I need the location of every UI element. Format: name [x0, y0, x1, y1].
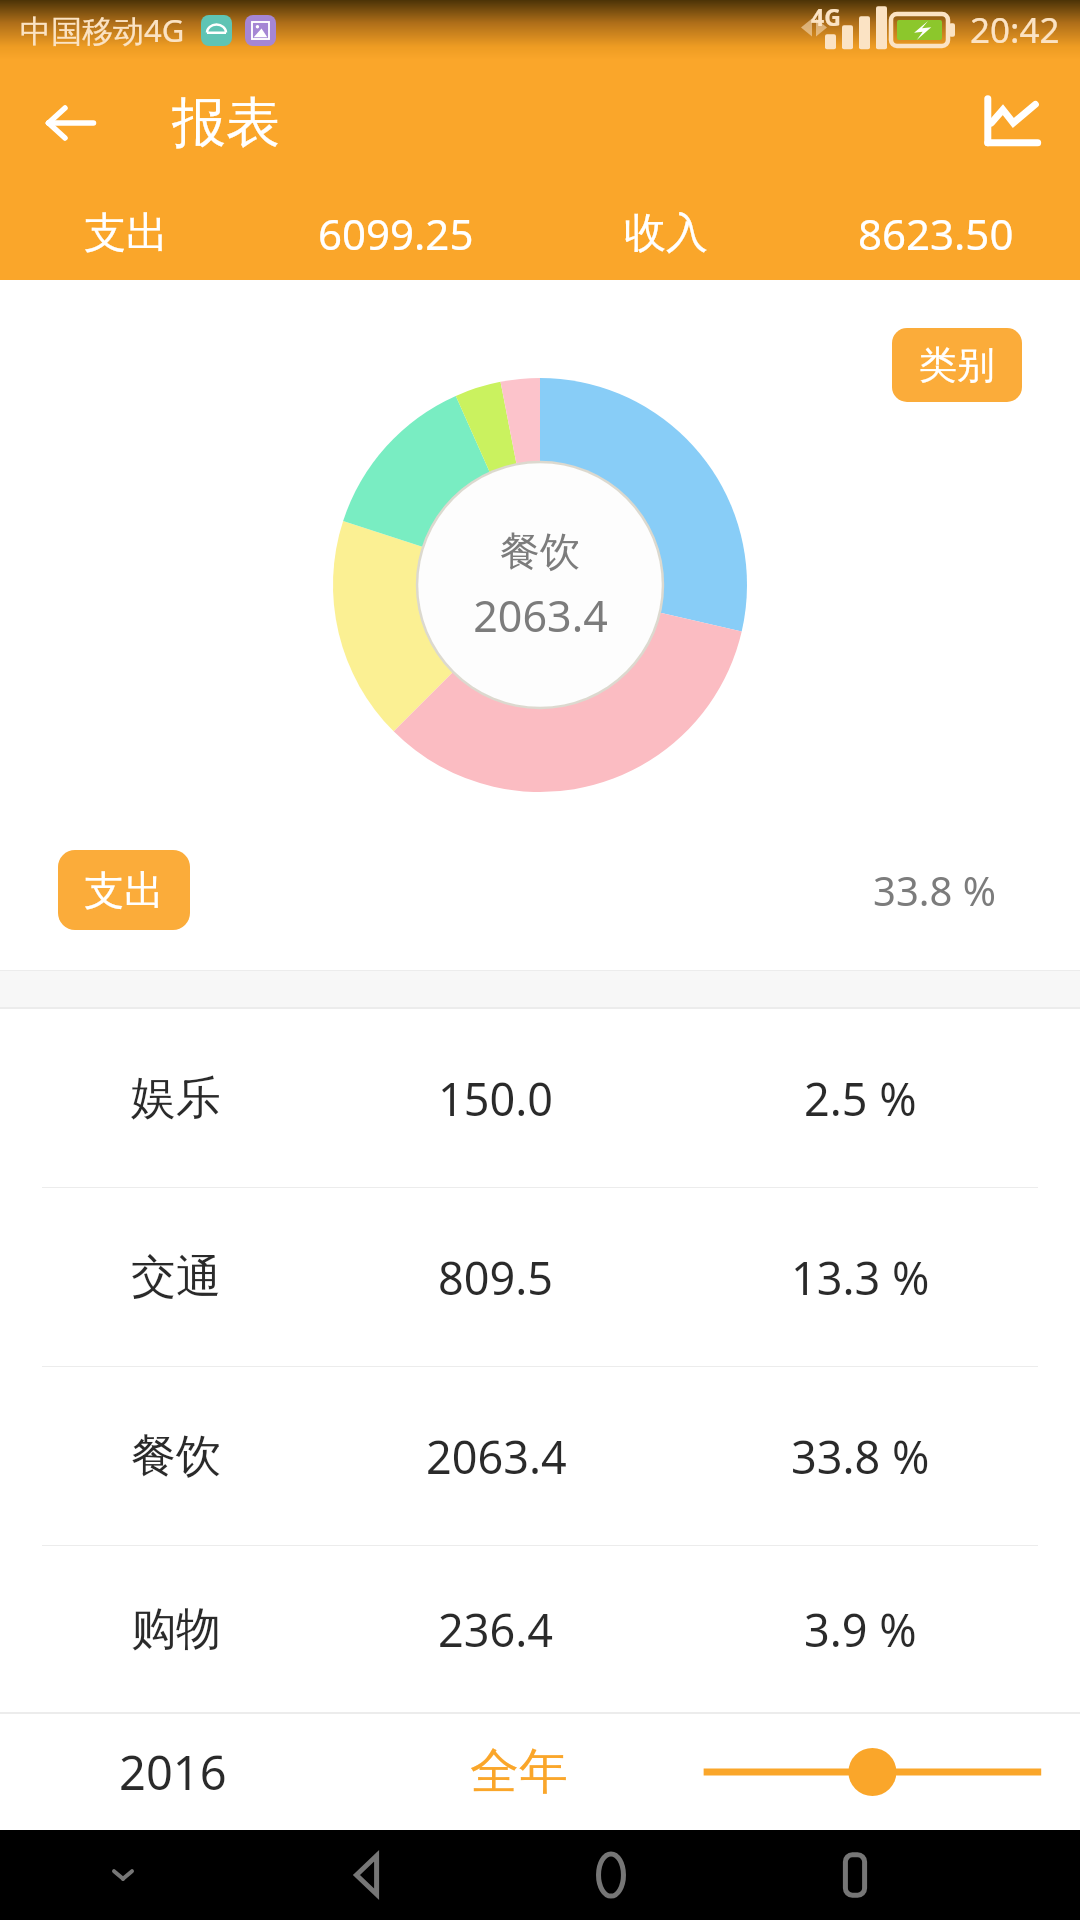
staticText: 中国移动4G: [20, 9, 185, 51]
staticText: 20:42: [970, 6, 1060, 54]
staticText: 2.5 %: [804, 1068, 917, 1129]
staticText: 报表: [172, 89, 280, 157]
staticText: 收入: [624, 207, 708, 260]
staticText: 2016: [119, 1740, 227, 1804]
button[interactable]: Home: [489, 1830, 733, 1920]
staticText: 支出: [84, 865, 164, 915]
staticText: 2063.4: [473, 586, 608, 645]
button[interactable]: Back: [245, 1830, 489, 1920]
staticText: 13.3 %: [791, 1247, 930, 1308]
staticText: 餐饮: [131, 1428, 221, 1485]
staticText: 类别: [919, 341, 995, 389]
button[interactable]: 2016: [0, 1714, 346, 1830]
staticText: 支出: [84, 207, 168, 260]
button[interactable]: Back: [26, 78, 116, 168]
staticText: 餐饮: [500, 526, 580, 576]
staticText: 150.0: [438, 1068, 554, 1129]
button[interactable]: Chart view: [966, 78, 1056, 168]
button[interactable]: 收入: [540, 186, 791, 280]
staticText: 4G: [811, 1, 841, 32]
staticText: 8623.50: [858, 205, 1014, 262]
staticText: 购物: [131, 1601, 221, 1658]
staticText: 809.5: [438, 1247, 554, 1308]
button[interactable]: 交通: [0, 1188, 1080, 1366]
button[interactable]: 支出: [58, 850, 190, 930]
staticText: 6099.25: [318, 205, 474, 262]
button[interactable]: 类别: [892, 328, 1022, 402]
staticText: 交通: [131, 1249, 221, 1306]
staticText: 33.8 %: [791, 1426, 930, 1487]
staticText: 3.9 %: [804, 1599, 917, 1660]
button[interactable]: Recent apps: [733, 1830, 977, 1920]
button[interactable]: Hide navigation bar: [0, 1830, 245, 1920]
staticText: 全年: [470, 1741, 568, 1803]
staticText: 236.4: [438, 1599, 554, 1660]
button[interactable]: 餐饮: [0, 1367, 1080, 1545]
button[interactable]: 全年: [346, 1714, 692, 1830]
button[interactable]: 支出: [0, 186, 251, 280]
staticText: 2063.4: [426, 1426, 567, 1487]
staticText: 33.8 %: [873, 863, 996, 917]
button[interactable]: 购物: [0, 1546, 1080, 1712]
button[interactable]: 娱乐: [0, 1009, 1080, 1187]
button[interactable]: Zoom slider: [692, 1714, 1080, 1830]
staticText: 娱乐: [131, 1070, 221, 1127]
